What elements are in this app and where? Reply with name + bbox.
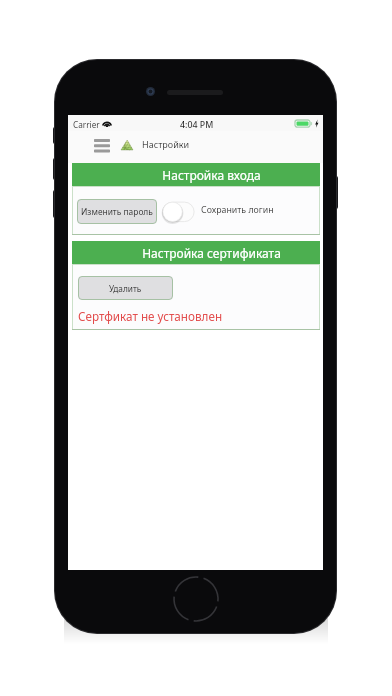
staticText: Настройка сертификата [142,245,281,261]
staticText: Изменить пароль [81,206,153,217]
staticText: 4:04 PM [180,119,214,131]
staticText: Carrier [73,119,100,130]
staticText: Настройки [142,138,190,150]
button[interactable]: Menu [89,133,114,157]
staticText: Сохранить логин [201,204,274,216]
button[interactable]: Удалить [78,276,173,300]
button[interactable]: Изменить пароль [77,199,157,224]
button[interactable]: Сохранить логин [162,201,196,223]
staticText: Сертфикат не установлен [78,308,223,324]
staticText: Настройка входа [162,167,261,183]
staticText: Удалить [109,283,142,294]
